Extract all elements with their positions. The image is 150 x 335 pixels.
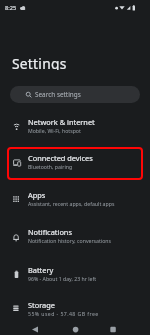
button[interactable] (0, 288, 150, 323)
button[interactable] (0, 178, 150, 213)
staticText: Settings (12, 54, 67, 70)
staticText: Notifications (28, 227, 72, 237)
staticText: Bluetooth, pairing (28, 163, 73, 170)
staticText: 55% used - 57.48 GB free (28, 310, 99, 317)
button[interactable] (50, 320, 100, 335)
staticText: Apps (28, 190, 46, 200)
button[interactable] (0, 141, 150, 176)
staticText: Storage (28, 300, 55, 310)
staticText: Notification history, conversations (28, 237, 112, 244)
staticText: Search settings (35, 90, 81, 99)
staticText: Assistant, recent apps, default apps (28, 200, 115, 207)
staticText: 96% - About 1 day, 23 hr left (28, 275, 97, 282)
button[interactable] (0, 215, 150, 250)
staticText: Network & internet (28, 117, 95, 127)
staticText: Battery (28, 265, 54, 275)
button[interactable]: Search settings (10, 86, 140, 103)
staticText: 8:25 (5, 4, 17, 12)
button[interactable] (0, 320, 50, 335)
button[interactable] (0, 105, 150, 140)
staticText: Connected devices (28, 153, 93, 163)
staticText: Mobile, Wi-Fi, hotspot (28, 127, 81, 134)
button[interactable] (100, 320, 150, 335)
button[interactable] (0, 253, 150, 288)
